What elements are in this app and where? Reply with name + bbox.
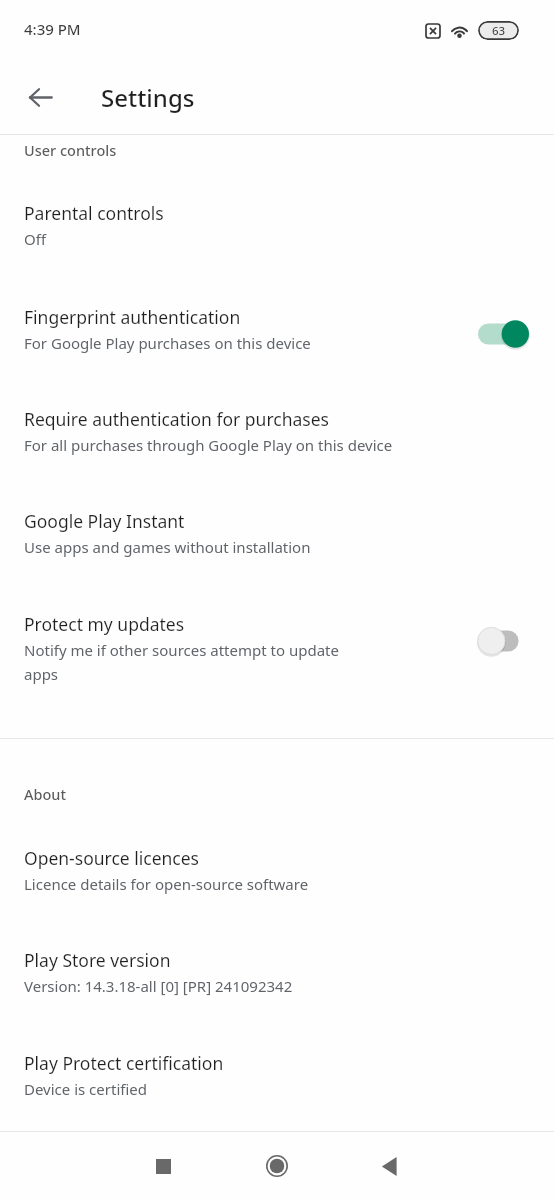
button[interactable]: Toggle off [478, 626, 530, 656]
button[interactable]: Fingerprint authentication [0, 294, 554, 370]
button[interactable]: Google Play Instant [0, 498, 554, 574]
staticText: Use apps and games without installation [24, 537, 311, 557]
staticText: Google Play Instant [24, 509, 185, 533]
button[interactable]: Protect my updates [0, 601, 554, 701]
button[interactable]: Open-source licences [0, 835, 554, 911]
staticText: Notify me if other sources attempt to up… [24, 640, 339, 660]
staticText: About [24, 784, 66, 804]
button[interactable]: Play Protect certification [0, 1040, 554, 1116]
staticText: Fingerprint authentication [24, 305, 241, 329]
staticText: Version: 14.3.18-all [0] [PR] 241092342 [24, 976, 293, 996]
button[interactable]: Back [14, 71, 66, 123]
button[interactable]: Require authentication for purchases [0, 396, 554, 472]
staticText: For all purchases through Google Play on… [24, 435, 393, 455]
button[interactable]: Home [253, 1142, 301, 1190]
staticText: Off [24, 229, 47, 249]
staticText: Parental controls [24, 201, 164, 225]
staticText: Play Store version [24, 948, 171, 972]
button[interactable]: Back [365, 1142, 413, 1190]
staticText: 63 [492, 23, 506, 39]
staticText: Require authentication for purchases [24, 407, 329, 431]
staticText: User controls [24, 140, 117, 160]
staticText: Licence details for open-source software [24, 874, 309, 894]
staticText: apps [24, 664, 59, 684]
staticText: Play Protect certification [24, 1051, 224, 1075]
staticText: Open-source licences [24, 846, 199, 870]
staticText: For Google Play purchases on this device [24, 333, 311, 353]
staticText: 4:39 PM [24, 19, 81, 39]
button[interactable]: Parental controls [0, 190, 554, 266]
button[interactable]: Play Store version [0, 937, 554, 1013]
button[interactable]: Recent apps [139, 1142, 187, 1190]
staticText: Protect my updates [24, 612, 185, 636]
button[interactable]: Toggle on [478, 319, 530, 349]
staticText: Device is certified [24, 1079, 147, 1099]
staticText: Settings [101, 81, 195, 114]
